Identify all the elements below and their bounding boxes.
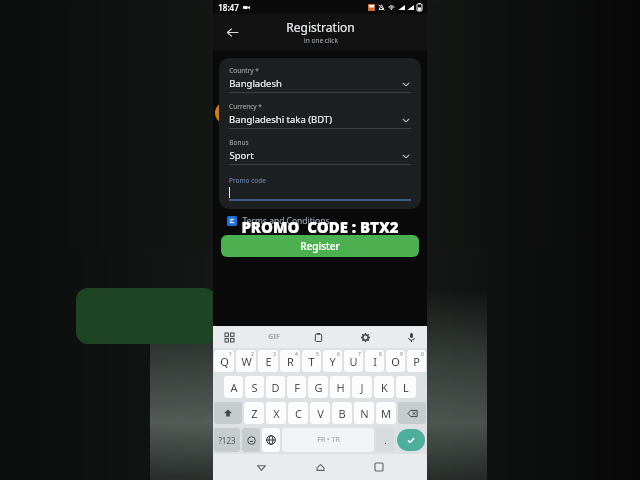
- button[interactable]: E: [258, 350, 278, 372]
- button[interactable]: Bonus: [229, 138, 411, 165]
- staticText: K: [381, 380, 388, 395]
- button[interactable]: R: [280, 350, 300, 372]
- staticText: Register: [300, 239, 340, 253]
- button[interactable]: J: [352, 376, 372, 398]
- button[interactable]: U: [344, 350, 363, 372]
- staticText: R: [287, 354, 294, 369]
- button[interactable]: Terms and Conditions: [227, 215, 427, 227]
- button[interactable]: L: [396, 376, 416, 398]
- button[interactable]: Back: [250, 456, 272, 478]
- staticText: M: [381, 406, 391, 421]
- staticText: 9: [400, 351, 403, 358]
- button[interactable]: Toolbox: [221, 329, 237, 345]
- button[interactable]: T: [302, 350, 321, 372]
- staticText: W: [241, 354, 252, 369]
- staticText: I: [373, 354, 377, 369]
- button[interactable]: G: [308, 376, 328, 398]
- button[interactable]: Home: [309, 456, 331, 478]
- button[interactable]: K: [374, 376, 394, 398]
- button[interactable]: GIF: [268, 332, 280, 342]
- button[interactable]: C: [288, 402, 308, 424]
- button[interactable]: Voice input: [403, 329, 419, 345]
- staticText: Registration: [286, 19, 355, 35]
- staticText: PROMO CODE : BTX2: [241, 217, 399, 237]
- button[interactable]: H: [330, 376, 350, 398]
- staticText: G: [314, 380, 323, 395]
- button[interactable]: O: [386, 350, 405, 372]
- button[interactable]: Y: [323, 350, 342, 372]
- staticText: B: [338, 406, 346, 421]
- button[interactable]: F: [287, 376, 306, 398]
- staticText: E: [265, 354, 272, 369]
- staticText: F: [294, 380, 300, 395]
- button[interactable]: I: [365, 350, 384, 372]
- button[interactable]: Register: [221, 235, 419, 257]
- button[interactable]: .: [376, 428, 394, 452]
- button[interactable]: A: [224, 376, 243, 398]
- button[interactable]: Recents: [368, 456, 390, 478]
- button[interactable]: Shift: [214, 402, 242, 424]
- staticText: C: [295, 406, 302, 421]
- staticText: D: [271, 380, 280, 395]
- staticText: 1: [229, 351, 232, 358]
- staticText: X: [273, 406, 280, 421]
- staticText: FR • TR: [317, 435, 340, 445]
- button[interactable]: W: [236, 350, 256, 372]
- staticText: L: [403, 380, 409, 395]
- staticText: N: [360, 406, 369, 421]
- staticText: A: [230, 380, 238, 395]
- button[interactable]: Promo code: [229, 176, 411, 201]
- staticText: 8: [379, 351, 382, 358]
- staticText: 2: [251, 351, 254, 358]
- staticText: 0: [421, 351, 424, 358]
- button[interactable]: Emoji: [242, 428, 260, 452]
- staticText: S: [251, 380, 258, 395]
- staticText: H: [336, 380, 345, 395]
- staticText: 3: [273, 351, 276, 358]
- staticText: ?123: [218, 435, 236, 446]
- staticText: 18:47: [218, 2, 239, 13]
- staticText: T: [308, 354, 315, 369]
- staticText: Z: [251, 406, 258, 421]
- staticText: J: [360, 380, 364, 395]
- staticText: Promo code: [229, 176, 266, 185]
- button[interactable]: ?123: [214, 428, 240, 452]
- button[interactable]: P: [407, 350, 426, 372]
- staticText: Terms and Conditions: [242, 215, 330, 227]
- button[interactable]: M: [376, 402, 396, 424]
- staticText: 5: [316, 351, 319, 358]
- button[interactable]: FR • TR: [282, 428, 374, 452]
- staticText: O: [391, 354, 400, 369]
- button[interactable]: D: [266, 376, 285, 398]
- button[interactable]: Clipboard: [310, 329, 326, 345]
- button[interactable]: V: [310, 402, 330, 424]
- button[interactable]: X: [266, 402, 286, 424]
- staticText: GIF: [268, 332, 280, 342]
- staticText: Bonus: [229, 138, 249, 147]
- staticText: P: [413, 354, 420, 369]
- staticText: Country *: [229, 66, 259, 75]
- button[interactable]: Country *: [229, 66, 411, 93]
- staticText: .: [384, 434, 387, 446]
- staticText: Currency *: [229, 102, 262, 111]
- staticText: Sport: [229, 149, 254, 162]
- staticText: 4: [295, 351, 298, 358]
- button[interactable]: Currency *: [229, 102, 411, 129]
- staticText: in one click: [304, 36, 338, 45]
- staticText: 7: [358, 351, 361, 358]
- button[interactable]: Z: [244, 402, 264, 424]
- staticText: U: [349, 354, 358, 369]
- button[interactable]: S: [245, 376, 264, 398]
- staticText: V: [317, 406, 324, 421]
- button[interactable]: B: [332, 402, 352, 424]
- button[interactable]: Enter: [397, 429, 425, 451]
- staticText: 6: [337, 351, 340, 358]
- button[interactable]: Change language: [262, 428, 280, 452]
- button[interactable]: Q: [214, 350, 234, 372]
- button[interactable]: Back: [219, 19, 245, 45]
- button[interactable]: Backspace: [398, 402, 426, 424]
- staticText: Bangladeshi taka (BDT): [229, 113, 332, 126]
- button[interactable]: N: [354, 402, 374, 424]
- staticText: Y: [329, 354, 336, 369]
- button[interactable]: Settings: [357, 329, 373, 345]
